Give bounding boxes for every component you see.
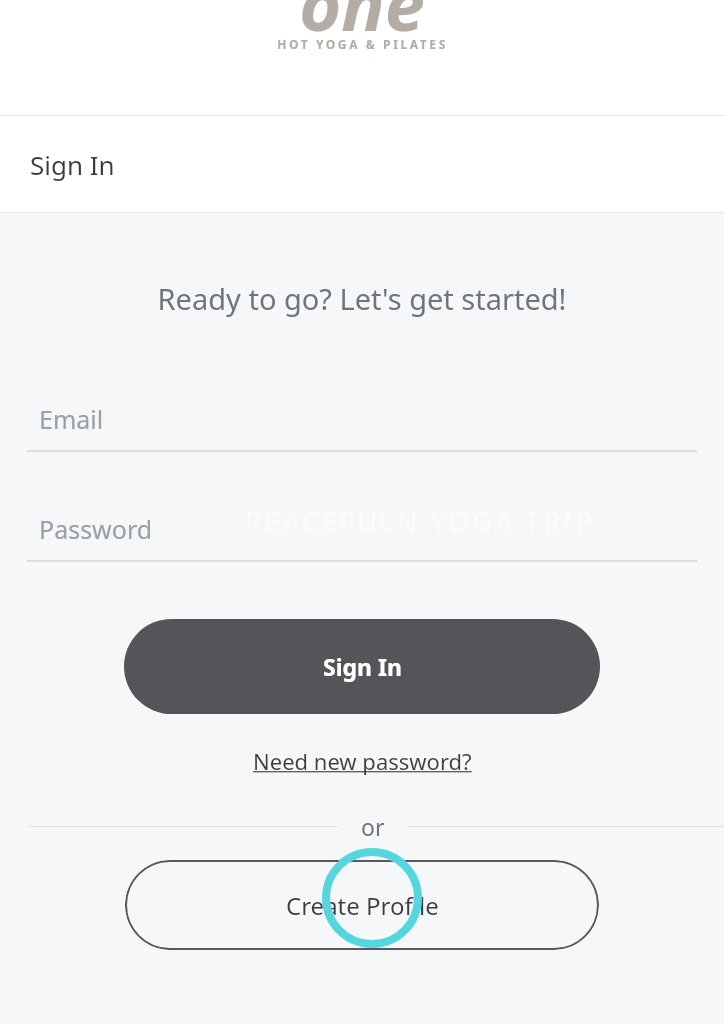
button[interactable]: Password: [27, 512, 697, 562]
button[interactable]: Sign In: [124, 619, 600, 714]
staticText: HOT YOGA & PILATES: [277, 36, 448, 52]
staticText: Create Profile: [286, 889, 439, 922]
staticText: Password: [39, 512, 153, 546]
staticText: or: [361, 811, 385, 841]
button[interactable]: Create Profile: [125, 860, 599, 950]
button[interactable]: Need new password?: [245, 742, 480, 780]
other: Touch indicator: [315, 848, 429, 948]
staticText: Email: [39, 402, 104, 436]
staticText: Sign In: [30, 147, 115, 182]
staticText: Need new password?: [253, 746, 472, 776]
staticText: one: [299, 0, 425, 52]
button[interactable]: Email: [27, 402, 697, 452]
staticText: Ready to go? Let's get started!: [0, 279, 724, 318]
staticText: Sign In: [323, 651, 402, 682]
